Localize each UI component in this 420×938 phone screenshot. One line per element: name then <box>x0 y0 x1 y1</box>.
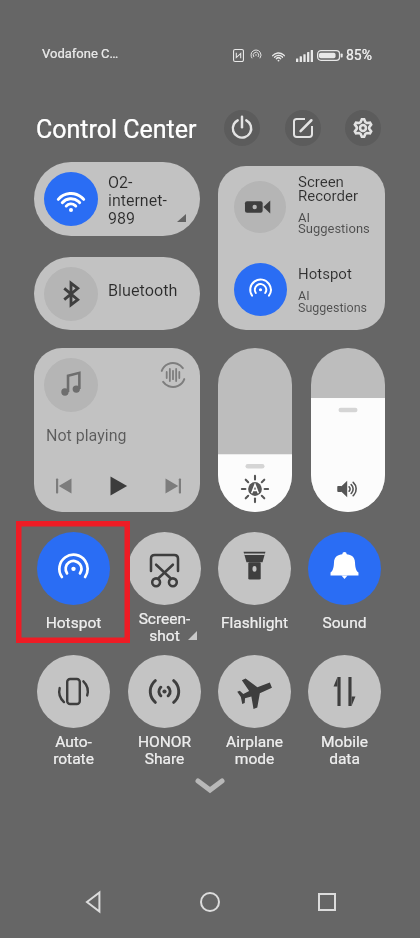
button[interactable]: Screen- shot <box>119 532 210 646</box>
button[interactable]: Bluetooth <box>34 257 200 330</box>
button[interactable]: Audio output <box>158 360 188 390</box>
button[interactable]: Power <box>224 110 260 146</box>
staticText: Mobile data <box>299 733 390 768</box>
staticText: Vodafone C… <box>42 46 119 61</box>
staticText: Airplane mode <box>209 733 300 768</box>
button[interactable]: Volume <box>311 348 385 512</box>
button[interactable]: Airplane mode <box>209 655 300 769</box>
staticText: Flashlight <box>209 614 300 632</box>
staticText: Sound <box>299 614 390 632</box>
staticText: AI Suggestions <box>298 288 368 315</box>
button[interactable]: Auto- rotate <box>28 655 119 769</box>
staticText: Auto- rotate <box>28 733 119 768</box>
staticText: AI Suggestions <box>298 210 370 236</box>
button[interactable]: Back <box>71 879 117 925</box>
button[interactable]: HONOR Share <box>119 655 210 769</box>
button[interactable]: Mobile data <box>299 655 390 769</box>
button[interactable]: Previous <box>49 471 79 501</box>
staticText: Hotspot <box>28 614 119 632</box>
staticText: O2- internet- 989 <box>108 173 167 228</box>
staticText: Bluetooth <box>108 281 178 300</box>
staticText: Hotspot <box>298 265 352 283</box>
button[interactable]: Screen Recorder <box>218 166 385 248</box>
button[interactable]: Play <box>103 471 133 501</box>
button[interactable]: Recents <box>304 879 350 925</box>
button[interactable]: Edit <box>285 110 321 146</box>
button[interactable]: Audio output <box>34 348 200 512</box>
button[interactable]: Sound <box>299 532 390 646</box>
staticText: HONOR Share <box>119 733 210 768</box>
staticText: Not playing <box>46 426 127 445</box>
button[interactable]: Control Center <box>36 115 197 144</box>
button[interactable]: Hotspot <box>218 248 385 330</box>
button[interactable]: Hotspot <box>28 532 119 646</box>
button[interactable]: Home <box>187 879 233 925</box>
button[interactable]: Settings <box>345 110 381 146</box>
button[interactable]: O2- internet- 989 <box>34 162 200 236</box>
button[interactable]: Brightness <box>218 348 292 512</box>
staticText: Screen Recorder <box>298 173 359 205</box>
staticText: 85% <box>346 47 372 63</box>
button[interactable]: Next <box>158 471 188 501</box>
staticText: Screen- shot <box>119 610 210 645</box>
staticText: Control Center <box>36 115 197 144</box>
button[interactable]: Flashlight <box>209 532 300 646</box>
